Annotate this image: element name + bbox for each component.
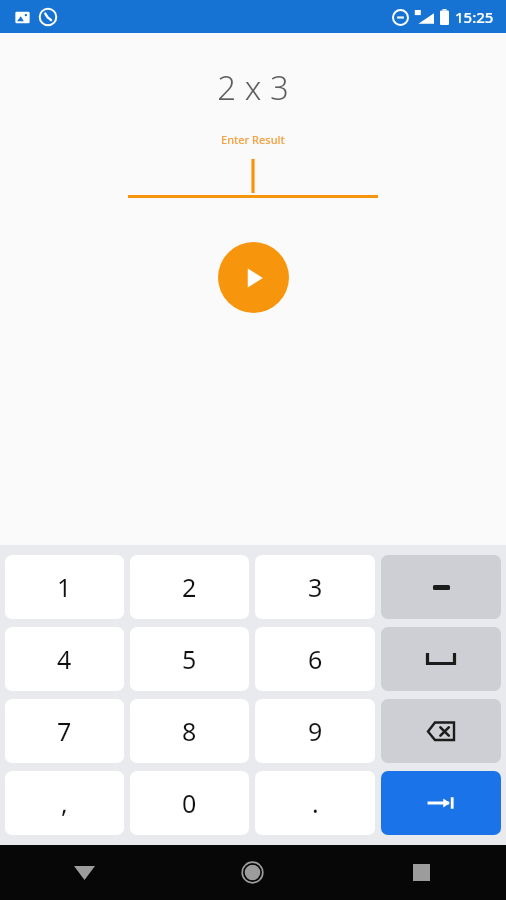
staticText: 15:25 [455,7,494,27]
staticText: 5 [182,642,197,676]
button[interactable]: 4 [5,627,124,691]
button[interactable]: Recents [337,845,506,900]
staticText: , [61,786,68,820]
staticText: 2 x 3 [217,65,289,110]
button[interactable]: 0 [130,771,249,835]
button[interactable] [128,156,378,198]
staticText: 3 [308,570,323,604]
button[interactable]: 5 [130,627,249,691]
staticText: Enter Result [221,132,285,147]
button[interactable]: Next [381,771,501,835]
staticText: 0 [182,786,197,820]
button[interactable]: 6 [255,627,375,691]
button[interactable]: . [255,771,375,835]
button[interactable]: Backspace [381,699,501,763]
staticText: 2 [182,570,197,604]
button[interactable]: 8 [130,699,249,763]
button[interactable]: 1 [5,555,124,619]
button[interactable]: Home [168,845,337,900]
button[interactable]: Minus [381,555,501,619]
button[interactable]: , [5,771,124,835]
staticText: 7 [57,714,72,748]
button[interactable]: 2 [130,555,249,619]
button[interactable]: 9 [255,699,375,763]
staticText: 1 [57,570,72,604]
staticText: 4 [57,642,72,676]
staticText: 6 [308,642,323,676]
staticText: 8 [182,714,197,748]
button[interactable]: Space [381,627,501,691]
button[interactable]: 7 [5,699,124,763]
button[interactable]: Back [0,845,168,900]
button[interactable]: Play [218,242,289,313]
staticText: . [312,786,319,820]
button[interactable]: 3 [255,555,375,619]
staticText: 9 [308,714,323,748]
